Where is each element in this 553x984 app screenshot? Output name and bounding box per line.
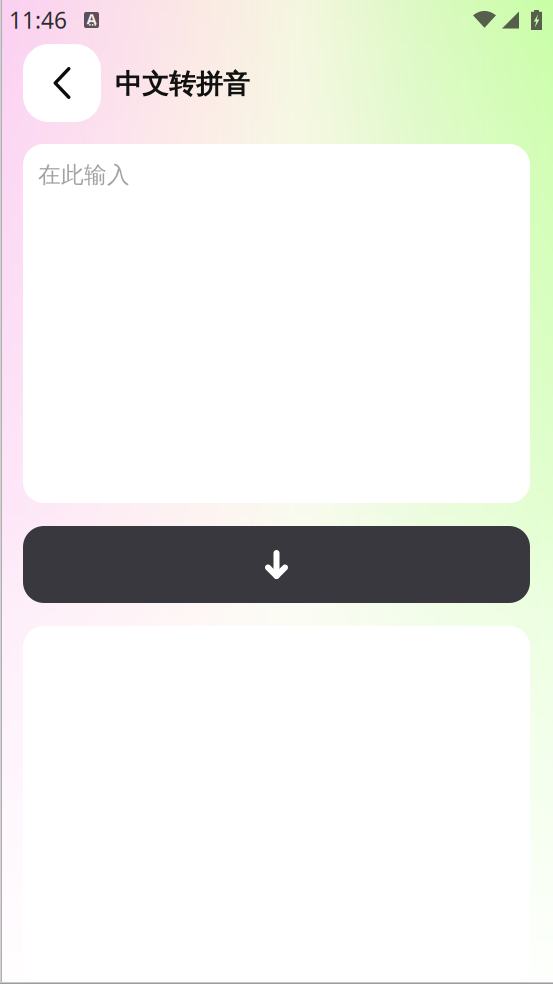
staticText: 中文转拼音 <box>115 68 250 100</box>
staticText: 11:46 <box>9 5 67 35</box>
button[interactable]: 返回 <box>23 44 101 122</box>
staticText: 在此输入 <box>38 161 130 189</box>
staticText: A <box>86 9 96 28</box>
button[interactable]: 转换 <box>23 526 530 603</box>
